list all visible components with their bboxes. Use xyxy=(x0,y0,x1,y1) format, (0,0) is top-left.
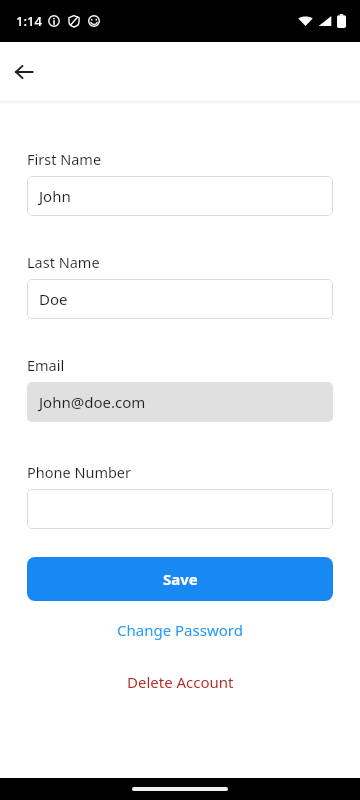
button[interactable]: John@doe.com xyxy=(27,382,333,422)
button[interactable]: Doe xyxy=(27,279,333,319)
button[interactable]: Back xyxy=(8,56,40,88)
button[interactable]: Delete Account xyxy=(0,669,360,695)
staticText: 1:14 xyxy=(16,12,42,30)
staticText: John xyxy=(39,186,71,206)
staticText: Email xyxy=(27,355,65,375)
staticText: Last Name xyxy=(27,252,100,272)
staticText: Doe xyxy=(39,289,68,309)
staticText: John@doe.com xyxy=(39,392,146,412)
button[interactable] xyxy=(27,489,333,529)
staticText: Phone Number xyxy=(27,462,132,482)
button[interactable]: Save xyxy=(27,557,333,601)
staticText: Save xyxy=(163,569,198,589)
button[interactable]: Change Password xyxy=(0,617,360,643)
staticText: First Name xyxy=(27,149,102,169)
staticText: Delete Account xyxy=(127,672,234,692)
button[interactable]: John xyxy=(27,176,333,216)
staticText: Change Password xyxy=(117,620,243,640)
